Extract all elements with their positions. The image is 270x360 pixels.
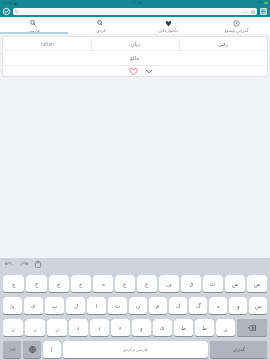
button[interactable]: س (249, 297, 267, 315)
staticText: ی (31, 303, 36, 309)
staticText: خ (79, 281, 83, 287)
button[interactable]: گەڕانی پێشوو (202, 17, 270, 34)
button[interactable]: گەڕان (210, 341, 267, 359)
button[interactable]: ء (111, 319, 130, 337)
staticText: ث (210, 281, 216, 287)
staticText: ف (166, 281, 172, 287)
button[interactable]: و (229, 297, 247, 315)
button[interactable]: رفتن (180, 37, 267, 50)
staticText: گ (196, 303, 201, 309)
staticText: 77% (257, 1, 263, 5)
button[interactable]: ڕ (216, 319, 235, 337)
staticText: گەڕانی پێشوو (224, 28, 249, 34)
button[interactable]: ف (159, 275, 179, 293)
button[interactable]: ه (93, 275, 113, 293)
staticText: ه (102, 281, 105, 287)
staticText: ڕ (224, 325, 228, 331)
button[interactable]: ر (47, 319, 67, 337)
staticText: ض (254, 281, 261, 287)
button[interactable] (20, 262, 28, 268)
staticText: زبان (131, 41, 141, 47)
staticText: غ (145, 281, 149, 287)
staticText: ت (115, 303, 121, 309)
staticText: ا (96, 303, 98, 309)
button[interactable] (145, 69, 153, 74)
button[interactable]: د (90, 319, 109, 337)
button[interactable] (260, 8, 267, 15)
button[interactable]: ە (209, 297, 227, 315)
staticText: ق (189, 281, 194, 287)
staticText: ژ (12, 325, 15, 331)
staticText: ر (56, 325, 59, 331)
button[interactable]: ص (225, 275, 245, 293)
staticText: ێ (10, 303, 15, 309)
button[interactable]: چ (3, 275, 24, 293)
staticText: م (156, 303, 160, 309)
button[interactable]: ئ (153, 319, 172, 337)
button[interactable]: دڵخوازەکان (134, 17, 202, 34)
button[interactable]: ێ (3, 297, 22, 315)
button[interactable]: ماکۆ (3, 51, 267, 65)
staticText: ص (232, 281, 239, 287)
staticText: ع (123, 281, 127, 287)
staticText: گەڕان (233, 347, 245, 352)
staticText: س (255, 303, 262, 309)
staticText: ء (119, 325, 122, 331)
button[interactable]: ل (66, 297, 85, 315)
button[interactable]: ض (247, 275, 267, 293)
button[interactable]: غ (137, 275, 157, 293)
staticText: رفتن (218, 41, 229, 47)
staticText: ز (34, 325, 37, 331)
button[interactable]: زبان (92, 37, 179, 50)
staticText: 7:12 AM (131, 1, 143, 5)
button[interactable] (13, 8, 257, 15)
button[interactable]: آ (43, 341, 61, 359)
staticText: ب (52, 303, 58, 309)
staticText: چ (12, 281, 16, 287)
button[interactable]: گ (189, 297, 207, 315)
button[interactable]: ط (174, 319, 193, 337)
staticText: ج (35, 281, 39, 287)
button[interactable] (35, 261, 41, 268)
button[interactable]: فارسی (0, 17, 67, 34)
button[interactable] (5, 262, 13, 268)
button[interactable]: ح (49, 275, 69, 293)
staticText: فارسی (27, 28, 40, 33)
button[interactable] (23, 341, 41, 359)
staticText: ک (176, 303, 181, 309)
button[interactable] (237, 319, 267, 337)
button[interactable]: ۱۲۳ (3, 341, 21, 359)
button[interactable] (3, 8, 10, 15)
button[interactable]: ذ (69, 319, 88, 337)
button[interactable]: ک (169, 297, 187, 315)
button[interactable]: ا (87, 297, 106, 315)
staticText: و (237, 303, 240, 309)
button[interactable]: ت (108, 297, 127, 315)
staticText: ط (181, 325, 187, 331)
button[interactable]: ث (203, 275, 223, 293)
staticText: د (98, 325, 101, 331)
staticText: ظ (202, 325, 208, 331)
button[interactable]: ب (45, 297, 64, 315)
button[interactable]: ظ (195, 319, 214, 337)
button[interactable]: فارسی و کردی (63, 341, 208, 359)
button[interactable]: raftan (3, 37, 91, 50)
button[interactable]: ق (181, 275, 201, 293)
button[interactable] (128, 67, 139, 76)
staticText: ئ (160, 325, 165, 331)
button[interactable]: ژ (3, 319, 23, 337)
button[interactable]: ی (24, 297, 43, 315)
staticText: آ (51, 347, 53, 353)
button[interactable]: ز (25, 319, 45, 337)
button[interactable]: ج (26, 275, 47, 293)
button[interactable]: کردی (67, 17, 134, 34)
staticText: ذ (77, 325, 80, 331)
staticText: و (140, 325, 143, 331)
button[interactable]: و (132, 319, 151, 337)
button[interactable]: خ (71, 275, 91, 293)
staticText: ماکۆ (130, 55, 140, 61)
button[interactable]: م (149, 297, 167, 315)
button[interactable]: ع (115, 275, 135, 293)
button[interactable]: ن (129, 297, 147, 315)
staticText: ح (57, 281, 61, 287)
